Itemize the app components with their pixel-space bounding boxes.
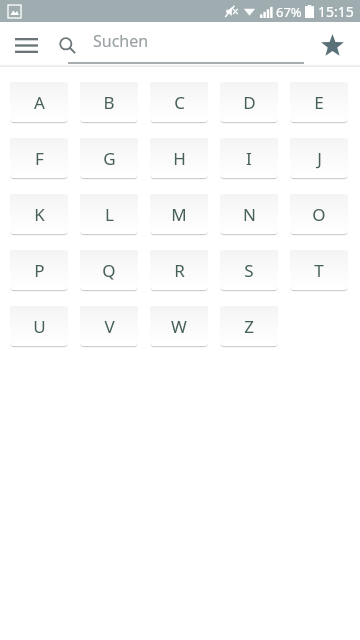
button[interactable]: A (10, 82, 68, 122)
staticText: Q (102, 259, 116, 282)
button[interactable]: Menu (8, 27, 44, 63)
button[interactable]: V (80, 306, 138, 346)
staticText: E (314, 91, 324, 114)
staticText: U (33, 315, 46, 338)
staticText: J (317, 147, 322, 170)
staticText: M (171, 203, 187, 226)
button[interactable]: Favorites (312, 25, 352, 65)
button[interactable]: E (290, 82, 348, 122)
staticText: B (103, 91, 115, 114)
button[interactable]: J (290, 138, 348, 178)
button[interactable]: P (10, 250, 68, 290)
staticText: H (173, 147, 186, 170)
staticText: L (105, 203, 114, 226)
staticText: A (34, 91, 45, 114)
staticText: T (314, 259, 324, 282)
button[interactable]: R (150, 250, 208, 290)
staticText: R (174, 259, 185, 282)
staticText: K (34, 203, 45, 226)
staticText: 67% (276, 3, 302, 21)
staticText: Suchen (93, 30, 149, 52)
button[interactable]: I (220, 138, 278, 178)
staticText: W (171, 315, 187, 338)
staticText: I (246, 147, 252, 170)
staticText: C (174, 91, 185, 114)
button[interactable]: O (290, 194, 348, 234)
button[interactable]: Suchen (68, 26, 304, 64)
button[interactable]: N (220, 194, 278, 234)
button[interactable]: D (220, 82, 278, 122)
staticText: N (243, 203, 256, 226)
button[interactable]: Q (80, 250, 138, 290)
button[interactable]: M (150, 194, 208, 234)
button[interactable]: G (80, 138, 138, 178)
button[interactable]: U (10, 306, 68, 346)
staticText: Z (244, 315, 254, 338)
button[interactable]: K (10, 194, 68, 234)
button[interactable]: Search (52, 30, 82, 60)
staticText: P (34, 259, 45, 282)
staticText: F (35, 147, 44, 170)
staticText: 15:15 (318, 2, 354, 21)
button[interactable]: W (150, 306, 208, 346)
button[interactable]: F (10, 138, 68, 178)
staticText: O (312, 203, 326, 226)
button[interactable]: C (150, 82, 208, 122)
staticText: S (244, 259, 254, 282)
staticText: D (243, 91, 256, 114)
button[interactable]: T (290, 250, 348, 290)
button[interactable]: B (80, 82, 138, 122)
button[interactable]: S (220, 250, 278, 290)
button[interactable]: Z (220, 306, 278, 346)
staticText: V (104, 315, 115, 338)
staticText: G (103, 147, 116, 170)
button[interactable]: L (80, 194, 138, 234)
button[interactable]: H (150, 138, 208, 178)
